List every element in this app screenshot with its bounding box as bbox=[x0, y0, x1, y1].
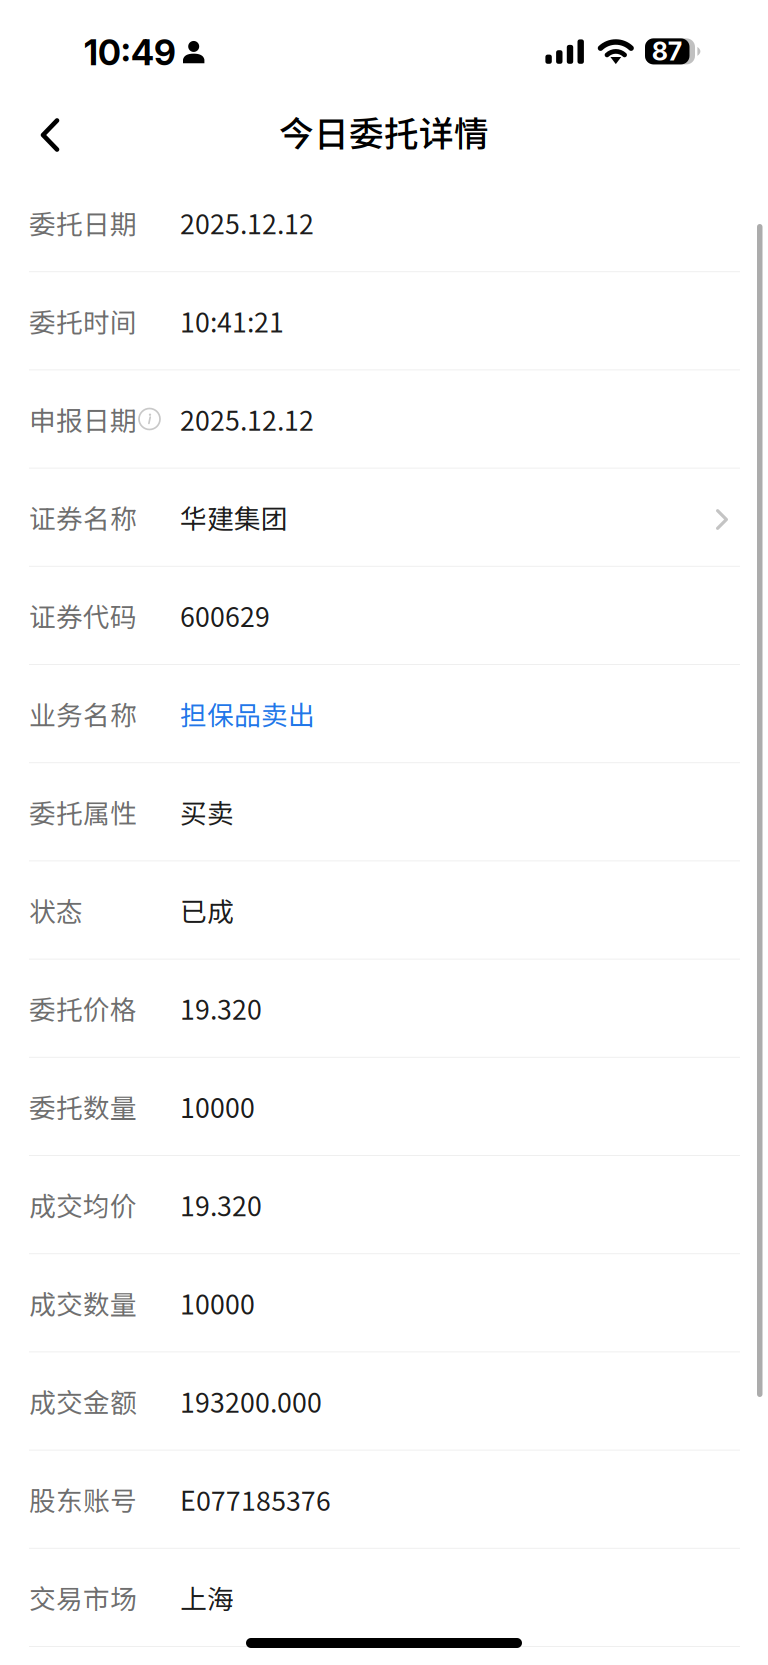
staticText: 19.320 bbox=[180, 989, 262, 1027]
staticText: 10000 bbox=[180, 1283, 255, 1322]
button[interactable]: 交易市场 bbox=[0, 1549, 768, 1647]
staticText: 600629 bbox=[180, 596, 270, 635]
staticText: 成交金额 bbox=[29, 1382, 137, 1420]
staticText: 申报日期 bbox=[29, 400, 137, 438]
staticText: 2025.12.12 bbox=[180, 400, 314, 438]
button[interactable]: 成交数量 bbox=[0, 1254, 768, 1352]
staticText: 委托日期 bbox=[29, 203, 137, 242]
button[interactable]: 委托数量 bbox=[0, 1058, 768, 1156]
button[interactable]: 委托价格 bbox=[0, 960, 768, 1058]
staticText: 证券代码 bbox=[29, 596, 137, 635]
staticText: 已成 bbox=[180, 891, 234, 929]
staticText: 87 bbox=[652, 36, 683, 67]
staticText: 股东账号 bbox=[29, 1480, 137, 1518]
staticText: 委托价格 bbox=[29, 989, 137, 1027]
staticText: 19.320 bbox=[180, 1185, 262, 1224]
button[interactable]: 委托属性 bbox=[0, 763, 768, 861]
staticText: 委托数量 bbox=[29, 1087, 137, 1126]
button[interactable]: 状态 bbox=[0, 861, 768, 960]
button[interactable]: 委托日期 bbox=[0, 174, 768, 272]
button[interactable]: 股东账号 bbox=[0, 1451, 768, 1549]
staticText: 10000 bbox=[180, 1087, 255, 1126]
button[interactable]: 成交金额 bbox=[0, 1352, 768, 1451]
button[interactable]: 证券名称 bbox=[0, 469, 768, 567]
staticText: 买卖 bbox=[180, 792, 234, 831]
staticText: 今日委托详情 bbox=[279, 106, 489, 157]
staticText: 委托属性 bbox=[29, 792, 137, 831]
staticText: 193200.000 bbox=[180, 1382, 322, 1420]
staticText: 成交数量 bbox=[29, 1283, 137, 1322]
staticText: 证券名称 bbox=[29, 498, 137, 536]
staticText: 业务名称 bbox=[29, 694, 137, 733]
button[interactable]: 申报日期 bbox=[0, 370, 768, 469]
staticText: 上海 bbox=[180, 1578, 234, 1617]
staticText: 状态 bbox=[29, 891, 83, 929]
staticText: 担保品卖出 bbox=[180, 694, 315, 733]
staticText: 10:49 bbox=[84, 32, 176, 74]
button[interactable]: 成交均价 bbox=[0, 1156, 768, 1254]
staticText: 华建集团 bbox=[180, 498, 288, 536]
staticText: 成交均价 bbox=[29, 1185, 137, 1224]
button[interactable]: 证券代码 bbox=[0, 567, 768, 665]
staticText: 交易市场 bbox=[29, 1578, 137, 1617]
button[interactable]: Back bbox=[14, 96, 86, 174]
button[interactable]: 委托时间 bbox=[0, 272, 768, 370]
staticText: E077185376 bbox=[180, 1480, 331, 1518]
staticText: 委托时间 bbox=[29, 301, 137, 340]
staticText: 2025.12.12 bbox=[180, 203, 314, 242]
staticText: 10:41:21 bbox=[180, 301, 284, 340]
button[interactable]: 业务名称 bbox=[0, 665, 768, 763]
